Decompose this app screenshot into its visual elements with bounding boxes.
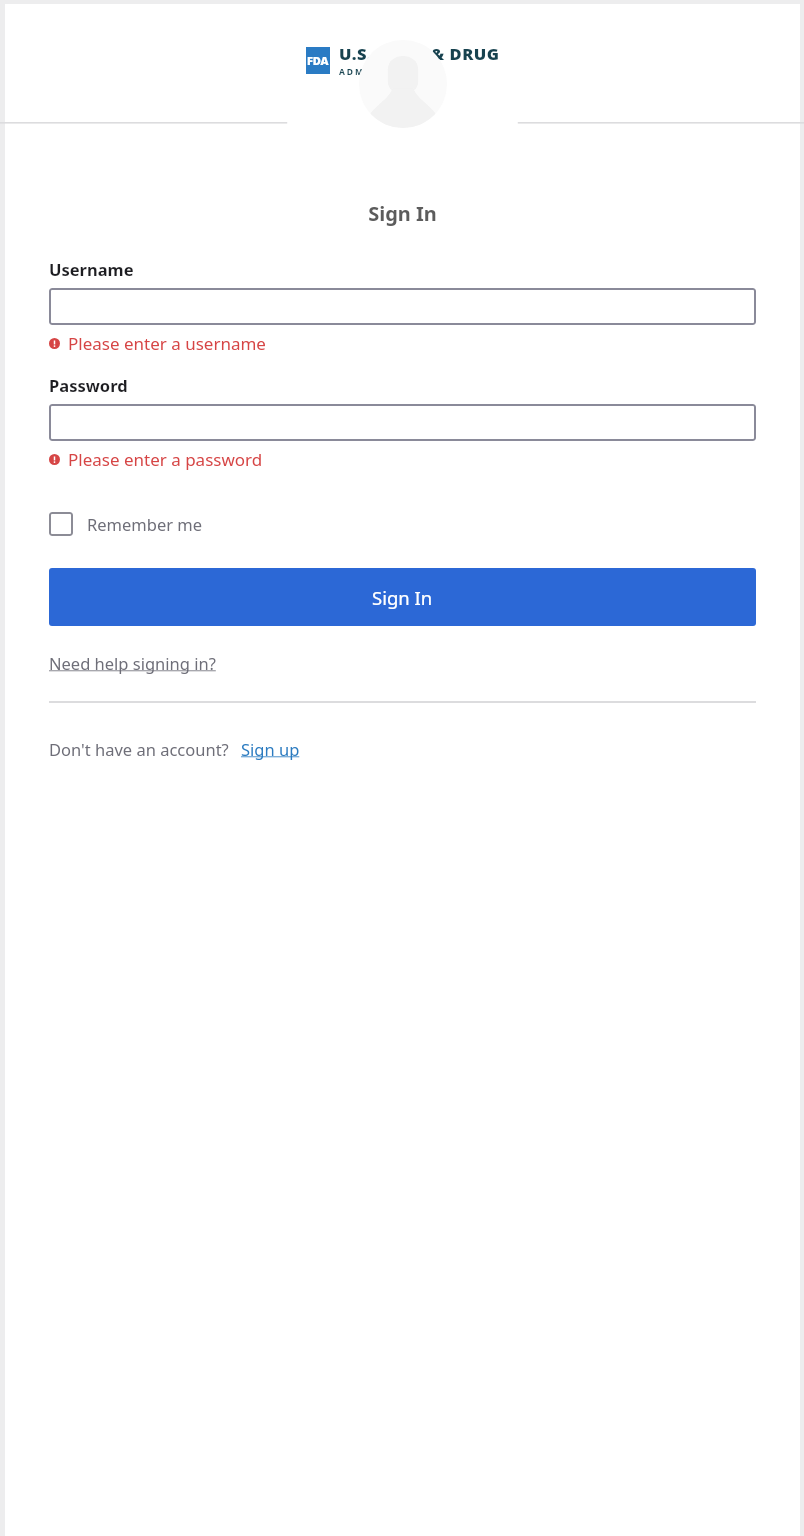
staticText: Need help signing in? — [49, 652, 216, 674]
button[interactable]: Password input — [49, 404, 756, 441]
button[interactable]: Remember me — [49, 512, 203, 536]
staticText: Username — [49, 258, 134, 280]
button[interactable]: Need help signing in? — [49, 652, 216, 674]
staticText: Don't have an account? — [49, 738, 229, 760]
staticText: U.S. FOOD & DRUG — [339, 42, 500, 64]
staticText: FDA — [307, 53, 329, 68]
other: Profile avatar — [359, 40, 447, 128]
staticText: Password — [49, 374, 128, 396]
button[interactable]: Sign In — [49, 568, 756, 626]
staticText: Please enter a username — [68, 332, 266, 355]
staticText: Sign In — [5, 200, 800, 227]
staticText: ADMINISTRATION — [339, 66, 442, 78]
button[interactable]: Username input — [49, 288, 756, 325]
staticText: Sign up — [241, 738, 300, 760]
staticText: Remember me — [87, 513, 203, 535]
staticText: Please enter a password — [68, 448, 263, 471]
button[interactable]: Sign up — [241, 738, 300, 760]
staticText: Sign In — [372, 585, 433, 610]
